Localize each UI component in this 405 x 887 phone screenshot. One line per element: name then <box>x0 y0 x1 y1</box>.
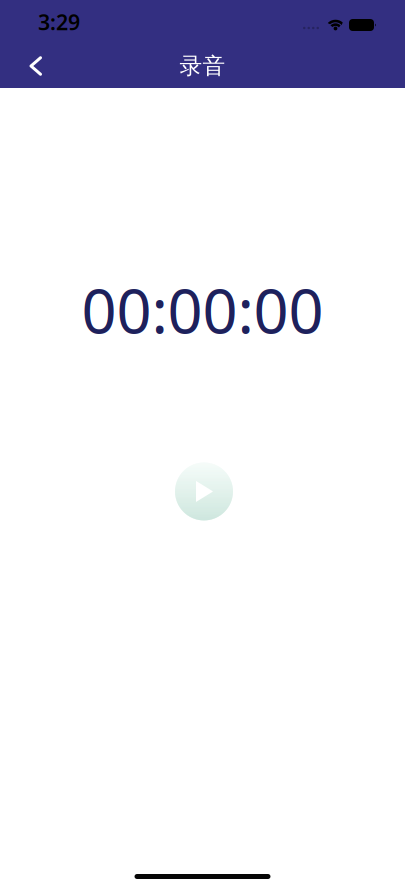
button[interactable]: Back <box>0 45 42 87</box>
staticText: 3:29 <box>38 8 80 36</box>
staticText: 录音 <box>179 52 225 80</box>
staticText: 00:00:00 <box>81 269 323 350</box>
button[interactable]: Start recording <box>173 462 231 520</box>
